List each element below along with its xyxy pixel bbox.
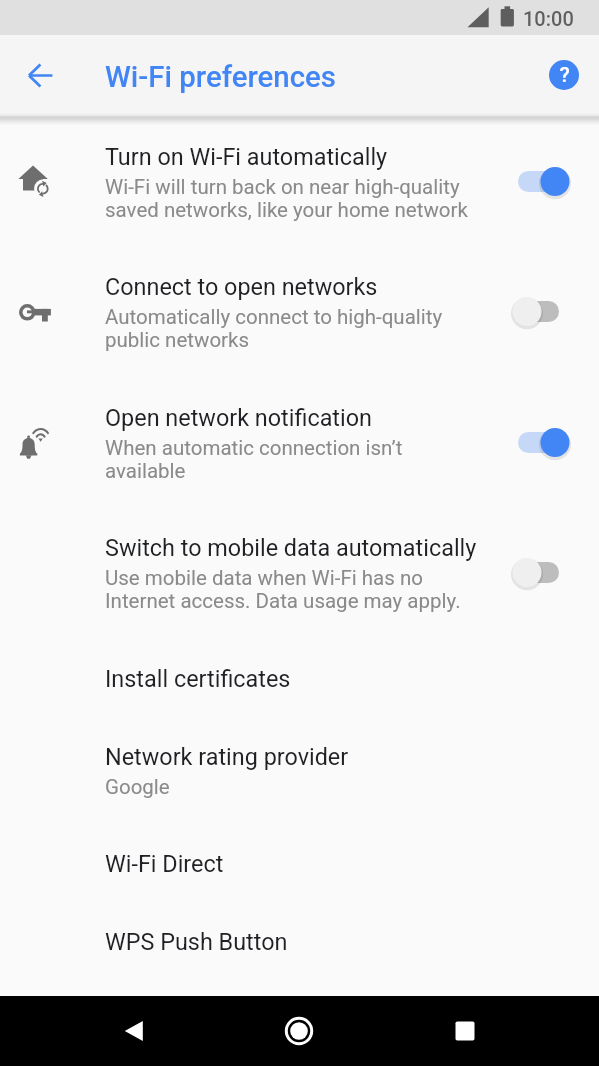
staticText: ?	[559, 63, 570, 88]
staticText: Switch to mobile data automatically	[105, 534, 477, 561]
staticText: When automatic connection isn’t availabl…	[105, 436, 403, 483]
staticText: Turn on Wi-Fi automatically	[105, 143, 388, 170]
staticText: Network rating provider	[105, 743, 349, 770]
button[interactable]: Install certificates	[0, 650, 599, 706]
staticText: Wi-Fi will turn back on near high-qualit…	[105, 175, 468, 222]
button[interactable]: Recent apps	[435, 1001, 495, 1061]
button[interactable]: WPS Push Button	[0, 913, 599, 969]
staticText: Connect to open networks	[105, 273, 378, 300]
button[interactable]: Toggle, off	[512, 296, 570, 327]
staticText: WPS Push Button	[105, 928, 288, 955]
staticText: Use mobile data when Wi-Fi has no Intern…	[105, 566, 461, 613]
button[interactable]: Help	[541, 52, 587, 98]
button[interactable]: Connect to open networks	[0, 258, 599, 354]
button[interactable]: Toggle, off	[512, 557, 570, 588]
button[interactable]: Open network notification	[0, 389, 599, 485]
staticText: 10:00	[523, 7, 574, 30]
staticText: Install certificates	[105, 665, 291, 692]
staticText: Automatically connect to high-quality pu…	[105, 305, 443, 352]
button[interactable]: Toggle, on	[512, 166, 570, 197]
staticText: Google	[105, 775, 170, 799]
staticText: Wi-Fi preferences	[105, 60, 336, 94]
button[interactable]: Turn on Wi-Fi automatically	[0, 128, 599, 224]
staticText: Open network notification	[105, 404, 372, 431]
button[interactable]: Switch to mobile data automatically	[0, 519, 599, 615]
button[interactable]: Home	[269, 1001, 329, 1061]
button[interactable]: Back	[104, 1001, 164, 1061]
button[interactable]: Network rating provider	[0, 728, 599, 802]
staticText: Wi-Fi Direct	[105, 850, 224, 877]
button[interactable]: Navigate up	[14, 50, 66, 102]
button[interactable]: Wi-Fi Direct	[0, 835, 599, 891]
button[interactable]: Toggle, on	[512, 427, 570, 458]
